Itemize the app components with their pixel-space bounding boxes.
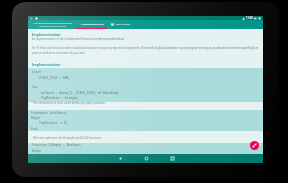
- staticText: STACK_SIZE = 100;: [39, 76, 71, 80]
- staticText: TopPointer := 0;: [39, 121, 69, 125]
- button[interactable]: 2. IMPLEMENTATION: [76, 20, 108, 29]
- staticText: End;: [31, 127, 39, 131]
- staticText: Implementation: [32, 32, 61, 37]
- staticText: TAKE A NOTE: [116, 23, 130, 26]
- staticText: We now implement the IsEmpty() and IsFul…: [33, 136, 102, 140]
- staticText: myStack : Array[1..STACK_SIZE] of DataIt…: [41, 91, 120, 95]
- staticText: 2. IMPLEMENTATION: [81, 23, 104, 26]
- button[interactable]: 1. FUNCTIONS INCLUDED IN OPERATING THE S…: [28, 20, 76, 29]
- button[interactable]: Take a note: [250, 141, 259, 150]
- button[interactable]: TAKE A NOTE: [108, 20, 143, 29]
- staticText: Function IsEmpty : Boolean;: [32, 143, 82, 147]
- staticText: An implementation of the fundamental fun…: [32, 37, 125, 41]
- staticText: Begin: [32, 149, 42, 153]
- button[interactable]: Home: [139, 154, 153, 163]
- staticText: 17:05: [246, 16, 253, 20]
- staticText: TopPointer : Integer;: [41, 96, 80, 100]
- staticText: Procedure InitStack;: [31, 111, 68, 115]
- button[interactable]: Back: [113, 154, 127, 163]
- staticText: Begin: [31, 116, 41, 120]
- staticText: The initialisation is to be called befor…: [33, 101, 106, 105]
- staticText: 1. FUNCTIONS INCLUDED IN OPERATING THE S…: [33, 22, 72, 28]
- staticText: For PI show you how to declare a stack d…: [32, 46, 260, 55]
- staticText: Implementation: [32, 62, 61, 67]
- staticText: Var: [32, 85, 38, 89]
- staticText: Const: [32, 70, 42, 74]
- button[interactable]: Recents: [165, 154, 179, 163]
